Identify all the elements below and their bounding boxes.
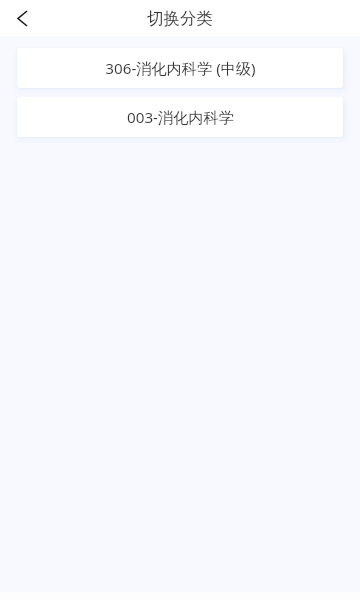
button[interactable]: 003-消化内科学 xyxy=(17,97,343,137)
staticText: 306-消化内科学 (中级) xyxy=(105,58,256,79)
button[interactable]: 306-消化内科学 (中级) xyxy=(17,48,343,88)
staticText: 切换分类 xyxy=(147,8,213,29)
button[interactable]: Back xyxy=(0,0,44,36)
staticText: 003-消化内科学 xyxy=(127,107,234,128)
